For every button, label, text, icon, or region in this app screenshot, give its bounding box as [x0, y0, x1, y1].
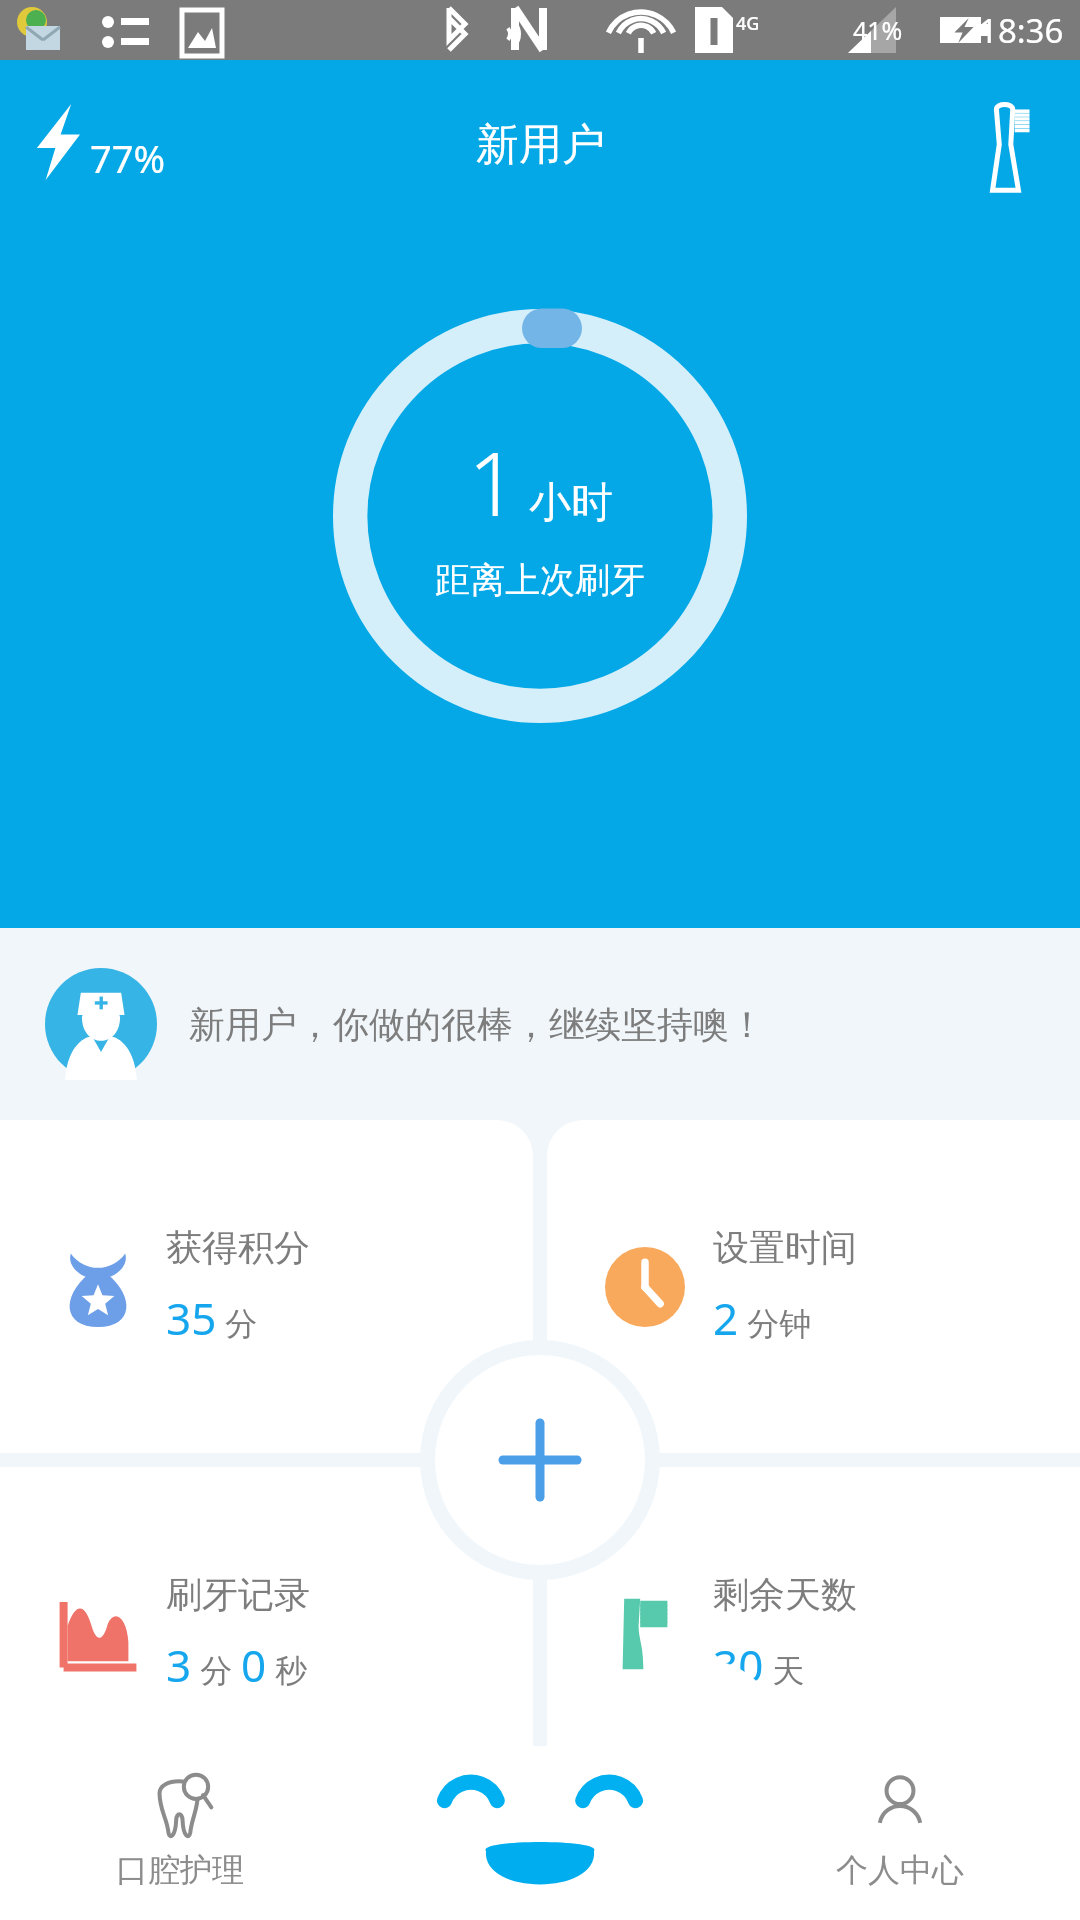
staticText: 天 [764, 1648, 805, 1692]
button[interactable]: 口腔护理 [0, 1768, 360, 1896]
staticText: 0 [241, 1635, 267, 1695]
button[interactable]: 个人中心 [720, 1768, 1080, 1896]
button[interactable]: 设置时间 [547, 1120, 1080, 1453]
button[interactable]: 获得积分 [0, 1120, 533, 1453]
staticText: 口腔护理 [116, 1850, 244, 1890]
staticText: 1 [468, 422, 519, 542]
staticText: 30 [713, 1635, 764, 1695]
staticText: 设置时间 [713, 1225, 857, 1270]
staticText: 剩余天数 [713, 1572, 857, 1617]
button[interactable]: 刷牙记录 [0, 1467, 533, 1800]
button[interactable]: 剩余天数 [547, 1467, 1080, 1800]
staticText: 35 [166, 1288, 217, 1348]
staticText: 3 [166, 1635, 192, 1695]
button[interactable]: Add record [435, 1355, 645, 1565]
staticText: 分 [192, 1648, 241, 1692]
staticText: 距离上次刷牙 [435, 558, 645, 602]
staticText: 新用户，你做的很棒，继续坚持噢！ [189, 1002, 765, 1047]
staticText: 18:36 [979, 8, 1064, 53]
staticText: 小时 [529, 477, 613, 530]
staticText: 41% [853, 13, 903, 47]
staticText: 获得积分 [166, 1225, 310, 1270]
staticText: 4G [736, 11, 760, 36]
staticText: 分钟 [739, 1301, 812, 1345]
staticText: 分 [217, 1301, 258, 1345]
staticText: 刷牙记录 [166, 1572, 310, 1617]
staticText: 个人中心 [836, 1850, 964, 1890]
staticText: 秒 [267, 1648, 308, 1692]
staticText: 77% [90, 132, 166, 184]
staticText: 新用户 [476, 118, 605, 172]
button[interactable]: Toothbrush [982, 102, 1030, 194]
button[interactable]: 新用户，你做的很棒，继续坚持噢！ [0, 928, 1080, 1120]
staticText: 2 [713, 1288, 739, 1348]
